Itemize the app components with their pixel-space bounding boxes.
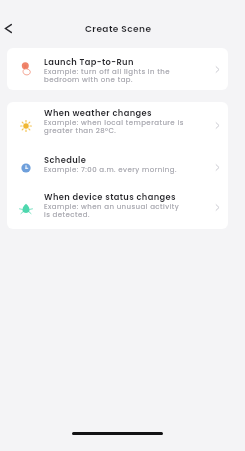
staticText: Example: when an unusual activity is det… <box>44 202 186 219</box>
button[interactable]: When weather changes <box>7 102 228 149</box>
button[interactable]: When device status changes <box>7 186 228 229</box>
staticText: Launch Tap-to-Run <box>44 56 134 68</box>
staticText: Example: turn off all lights in the bedr… <box>44 67 186 84</box>
staticText: Example: 7:00 a.m. every morning. <box>44 165 177 175</box>
button[interactable]: Launch Tap-to-Run <box>7 48 228 90</box>
staticText: When weather changes <box>44 107 152 119</box>
staticText: When device status changes <box>44 191 176 203</box>
staticText: Example: when local temperature is great… <box>44 118 186 135</box>
button[interactable]: Back <box>0 19 16 37</box>
button[interactable]: Schedule <box>7 149 228 186</box>
staticText: Schedule <box>44 154 87 166</box>
staticText: Create Scene <box>85 23 152 36</box>
